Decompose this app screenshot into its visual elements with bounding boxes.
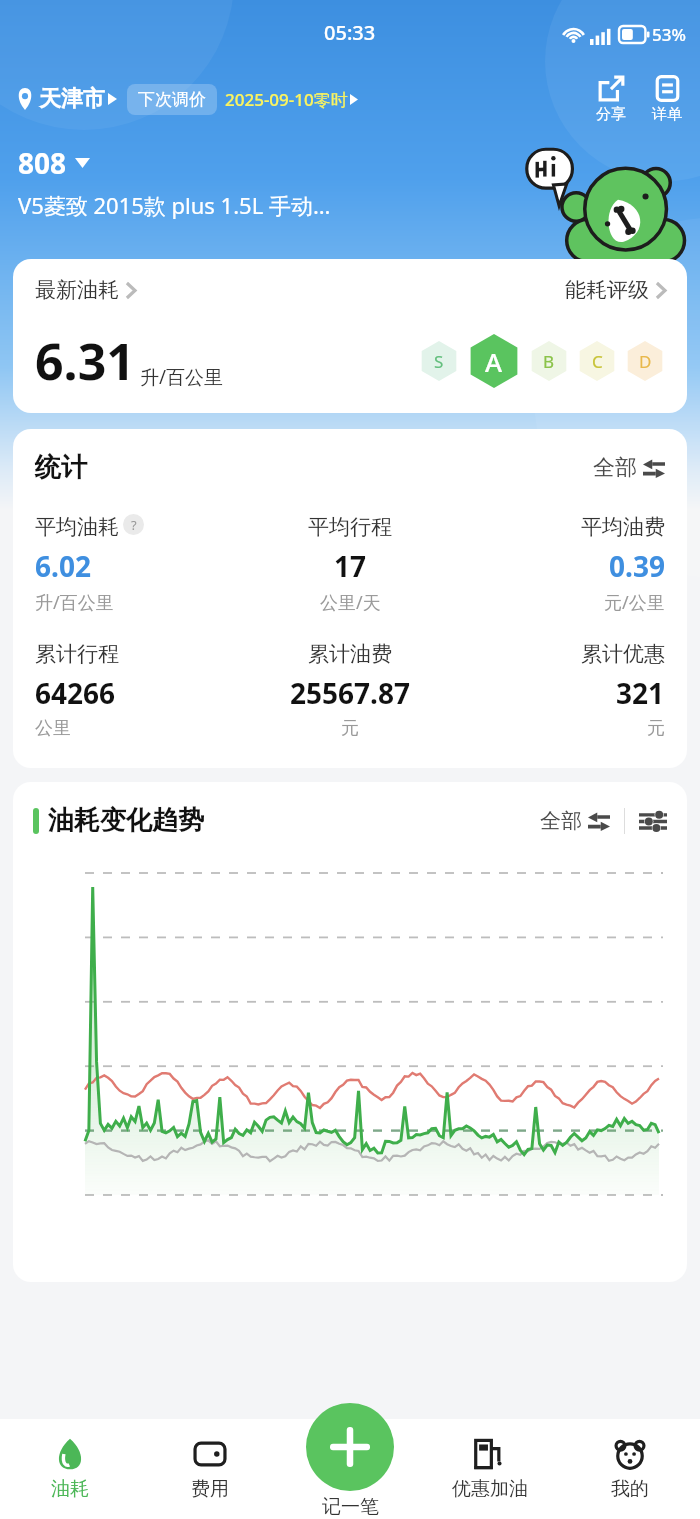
button[interactable]: 全部 xyxy=(540,808,610,834)
button[interactable]: 天津市 xyxy=(16,81,117,117)
staticText: 53% xyxy=(652,23,686,46)
staticText: 25567.87 xyxy=(290,674,410,712)
staticText: 平均行程 xyxy=(308,514,392,540)
button[interactable]: 详单 xyxy=(650,75,684,124)
staticText: 全部 xyxy=(593,454,637,482)
staticText: 公里 xyxy=(35,717,71,740)
staticText: 升/百公里 xyxy=(35,590,114,615)
staticText: 321 xyxy=(616,674,665,712)
staticText: A xyxy=(485,344,503,379)
button[interactable]: 油耗 xyxy=(0,1419,140,1519)
staticText: 累计优惠 xyxy=(581,641,665,667)
button[interactable]: 808 xyxy=(18,144,90,182)
button[interactable]: 分享 xyxy=(594,75,628,124)
staticText: 记一笔 xyxy=(322,1495,379,1519)
staticText: D xyxy=(639,350,652,373)
staticText: 天津市 xyxy=(39,85,105,113)
staticText: 累计行程 xyxy=(35,641,119,667)
staticText: 优惠加油 xyxy=(452,1477,528,1501)
button[interactable]: 累计行程 xyxy=(35,641,245,740)
staticText: 全部 xyxy=(540,808,582,834)
staticText: 最新油耗 xyxy=(35,277,119,303)
staticText: 平均油费 xyxy=(581,514,665,540)
staticText: 元 xyxy=(341,717,359,740)
staticText: 下次调价 xyxy=(138,89,206,110)
staticText: 平均油耗 xyxy=(35,514,119,540)
button[interactable]: 最新油耗 xyxy=(13,259,687,413)
staticText: 808 xyxy=(18,144,67,182)
button[interactable]: 筛选 xyxy=(639,810,667,832)
button[interactable]: 全部 xyxy=(593,454,665,482)
button[interactable]: 优惠加油 xyxy=(420,1419,560,1519)
staticText: 分享 xyxy=(596,105,626,124)
staticText: 费用 xyxy=(191,1477,229,1501)
button[interactable]: 平均油费 xyxy=(455,514,665,615)
staticText: S xyxy=(434,350,444,373)
staticText: 油耗变化趋势 xyxy=(48,804,204,837)
staticText: ? xyxy=(131,516,137,534)
staticText: 17 xyxy=(334,547,367,585)
staticText: 统计 xyxy=(35,451,87,484)
staticText: 能耗评级 xyxy=(565,277,649,303)
staticText: C xyxy=(592,350,603,373)
staticText: 累计油费 xyxy=(308,641,392,667)
staticText: 元 xyxy=(647,717,665,740)
staticText: 油耗 xyxy=(51,1477,89,1501)
staticText: 6.31 xyxy=(35,327,135,395)
staticText: 64266 xyxy=(35,674,116,712)
staticText: 2025-09-10零时 xyxy=(225,88,348,111)
staticText: 升/百公里 xyxy=(140,364,224,390)
button[interactable]: 平均油耗 xyxy=(35,514,245,615)
staticText: 0.39 xyxy=(609,547,665,585)
button[interactable]: 我的 xyxy=(560,1419,700,1519)
button[interactable]: 记一笔 xyxy=(306,1403,394,1519)
staticText: 05:33 xyxy=(324,19,376,46)
button[interactable]: 2025-09-10零时 xyxy=(225,88,358,111)
button[interactable]: 费用 xyxy=(140,1419,280,1519)
staticText: 我的 xyxy=(611,1477,649,1501)
staticText: 元/公里 xyxy=(604,590,665,615)
staticText: V5菱致 2015款 plus 1.5L 手动… xyxy=(18,190,331,220)
staticText: 详单 xyxy=(652,105,682,124)
staticText: B xyxy=(543,350,555,373)
staticText: 6.02 xyxy=(35,547,91,585)
button[interactable]: 累计优惠 xyxy=(455,641,665,740)
staticText: 公里/天 xyxy=(320,590,381,615)
button[interactable]: 平均行程 xyxy=(245,514,455,615)
button[interactable]: 累计油费 xyxy=(245,641,455,740)
button[interactable]: 下次调价 xyxy=(127,84,217,115)
